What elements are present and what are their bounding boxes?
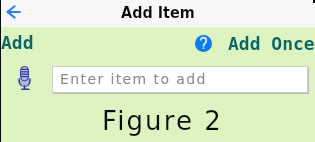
staticText: Enter item to add <box>60 71 207 87</box>
staticText: Add Item <box>121 3 195 22</box>
button[interactable]: Enter item to add <box>52 66 308 93</box>
button[interactable]: Add <box>0 32 35 53</box>
button[interactable]: Voice input <box>18 66 31 90</box>
button[interactable]: Back <box>4 0 24 24</box>
staticText: Add Once <box>228 33 315 54</box>
staticText: Figure 2 <box>102 106 223 136</box>
button[interactable]: Help <box>195 33 315 54</box>
staticText: Add <box>1 32 34 53</box>
other: Help <box>195 35 212 52</box>
